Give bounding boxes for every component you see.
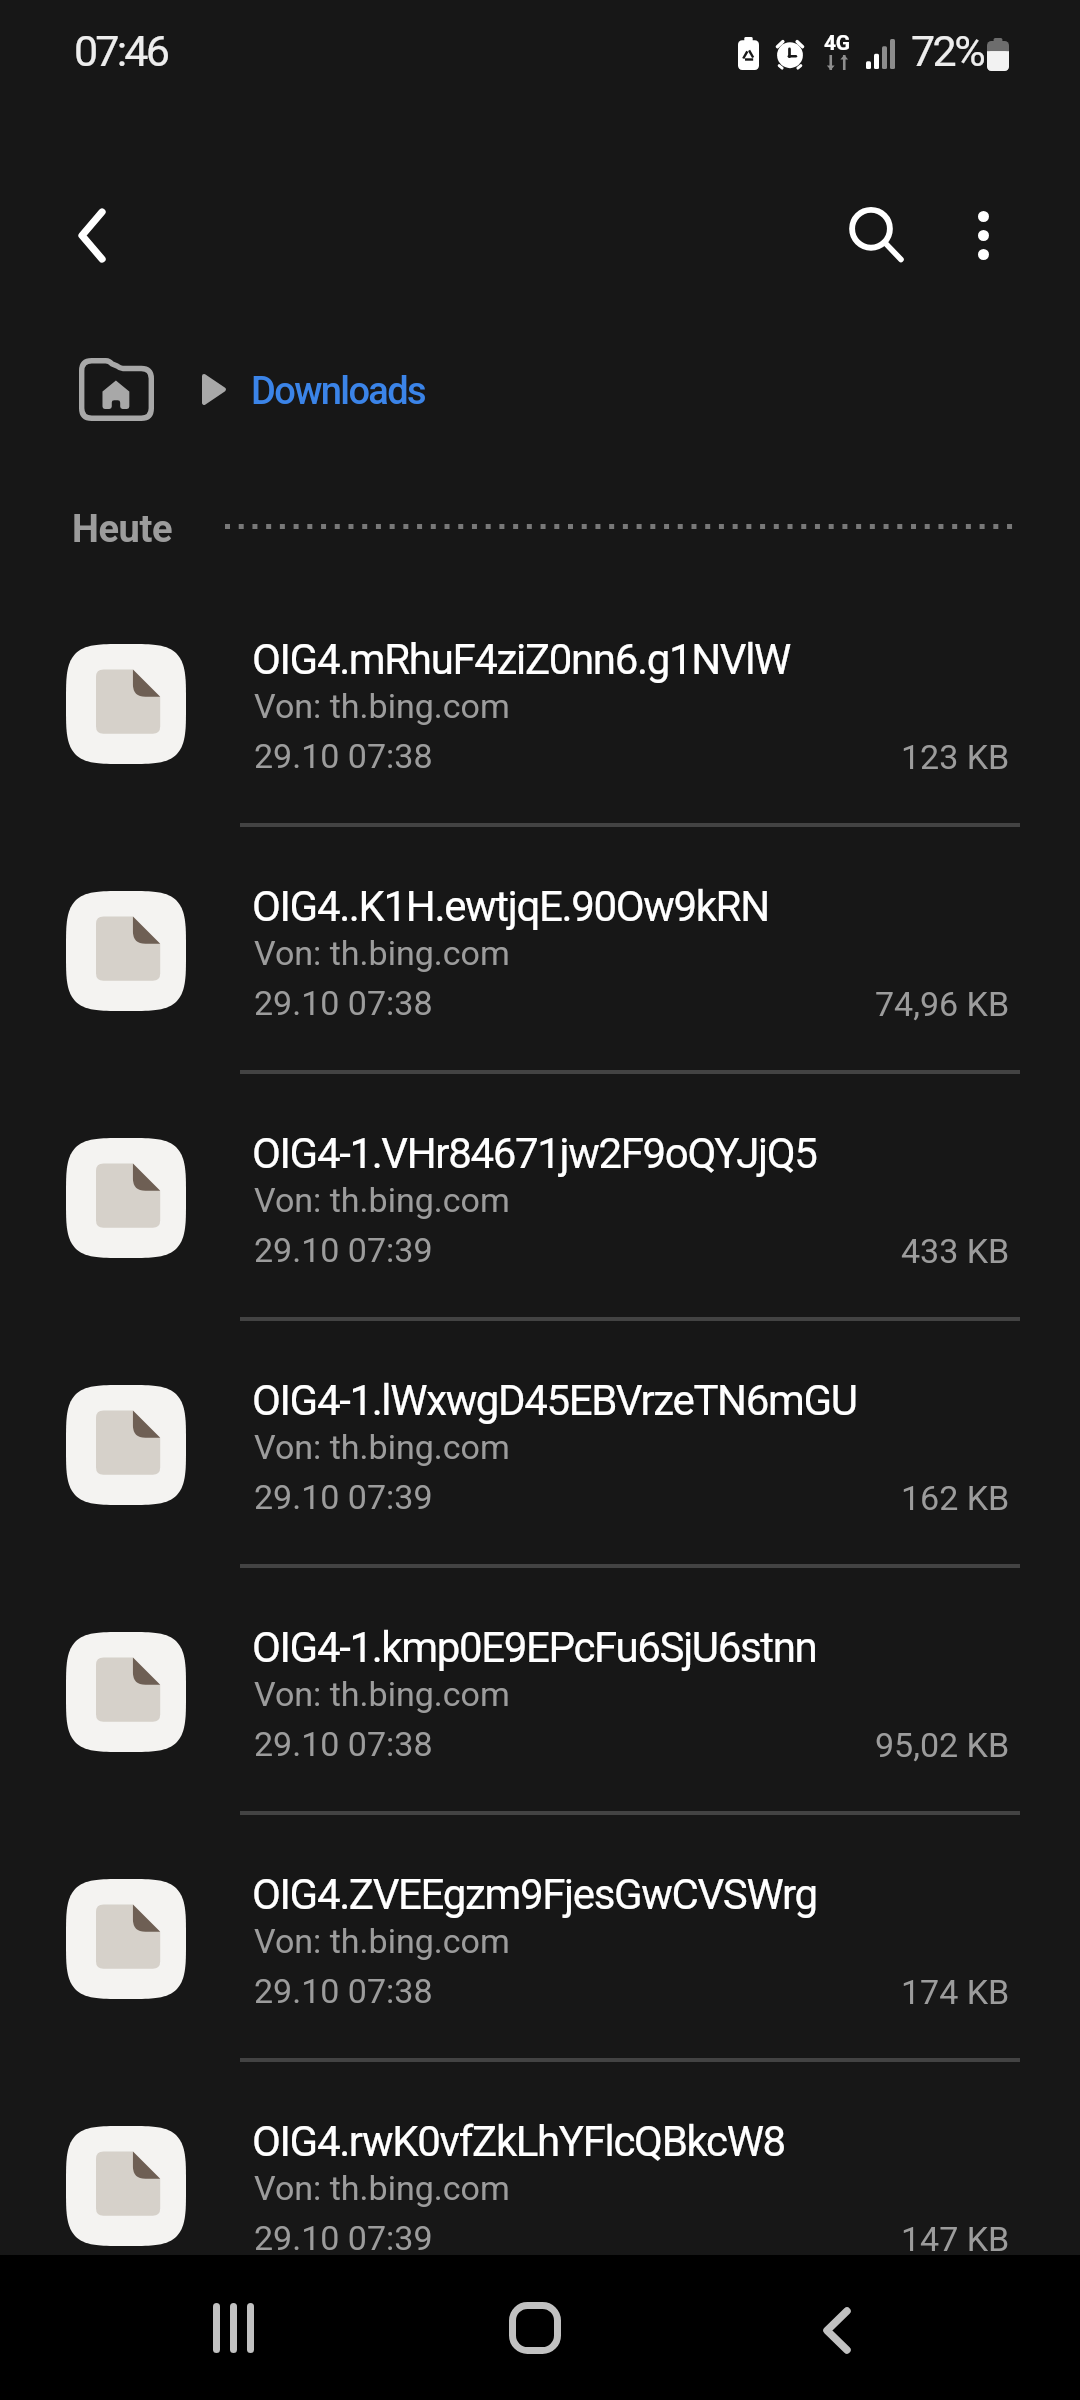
staticText: Von: th.bing.com [254, 1427, 510, 1467]
staticText: 174 KB [901, 1972, 1010, 2012]
staticText: 29.10 07:39 [254, 1230, 433, 1270]
staticText: 72% [911, 26, 984, 76]
button[interactable]: OIG4.mRhuF4ziZ0nn6.g1NVlW [0, 578, 1080, 825]
staticText: OIG4-1.kmp0E9EPcFu6SjU6stnn [252, 1623, 817, 1672]
staticText: 29.10 07:38 [254, 983, 433, 1023]
staticText: Von: th.bing.com [254, 686, 510, 726]
staticText: OIG4-1.VHr84671jw2F9oQYJjQ5 [252, 1129, 817, 1178]
staticText: Von: th.bing.com [254, 1674, 510, 1714]
button[interactable]: Back [28, 171, 156, 299]
staticText: Von: th.bing.com [254, 2168, 510, 2208]
staticText: 123 KB [901, 737, 1010, 777]
staticText: 95,02 KB [875, 1725, 1010, 1765]
button[interactable]: OIG4.ZVEEgzm9FjesGwCVSWrg [0, 1813, 1080, 2060]
staticText: 29.10 07:39 [254, 2218, 433, 2258]
button[interactable]: More options [919, 171, 1047, 299]
staticText: 74,96 KB [875, 984, 1010, 1024]
staticText: Downloads [251, 369, 426, 414]
button[interactable]: OIG4-1.lWxwgD45EBVrzeTN6mGU [0, 1319, 1080, 1566]
staticText: Heute [72, 507, 173, 552]
button[interactable]: OIG4-1.kmp0E9EPcFu6SjU6stnn [0, 1566, 1080, 1813]
button[interactable]: Back [777, 2270, 897, 2390]
button[interactable]: Home [475, 2268, 595, 2388]
staticText: 29.10 07:38 [254, 1971, 433, 2011]
button[interactable]: Recent apps [173, 2268, 293, 2388]
staticText: 4G [824, 31, 850, 56]
staticText: OIG4.mRhuF4ziZ0nn6.g1NVlW [252, 635, 790, 684]
staticText: Von: th.bing.com [254, 933, 510, 973]
staticText: OIG4.rwK0vfZkLhYFlcQBkcW8 [252, 2117, 785, 2166]
staticText: OIG4.ZVEEgzm9FjesGwCVSWrg [252, 1870, 817, 1919]
button[interactable]: Home folder [67, 346, 166, 433]
staticText: 29.10 07:38 [254, 1724, 433, 1764]
staticText: 29.10 07:39 [254, 1477, 433, 1517]
staticText: 29.10 07:38 [254, 736, 433, 776]
staticText: 162 KB [901, 1478, 1010, 1518]
button[interactable]: OIG4-1.VHr84671jw2F9oQYJjQ5 [0, 1072, 1080, 1319]
staticText: 147 KB [901, 2219, 1010, 2259]
staticText: OIG4-1.lWxwgD45EBVrzeTN6mGU [252, 1376, 857, 1425]
button[interactable]: Downloads [243, 352, 434, 428]
staticText: OIG4..K1H.ewtjqE.90Ow9kRN [252, 882, 769, 931]
button[interactable]: OIG4..K1H.ewtjqE.90Ow9kRN [0, 825, 1080, 1072]
staticText: 433 KB [901, 1231, 1010, 1271]
button[interactable]: Search [809, 166, 937, 294]
button[interactable]: OIG4.rwK0vfZkLhYFlcQBkcW8 [0, 2060, 1080, 2307]
staticText: 07:46 [74, 26, 168, 76]
staticText: Von: th.bing.com [254, 1180, 510, 1220]
staticText: Von: th.bing.com [254, 1921, 510, 1961]
